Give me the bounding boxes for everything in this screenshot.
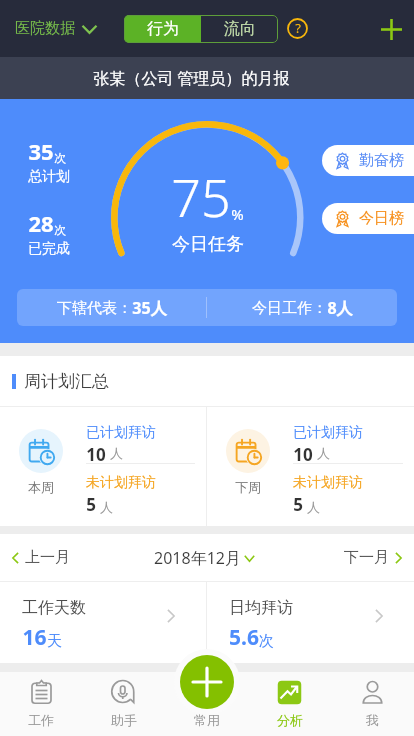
staticText: 人 bbox=[100, 499, 113, 515]
staticText: 未计划拜访 bbox=[86, 474, 156, 492]
button[interactable]: 分析 bbox=[248, 672, 331, 736]
staticText: 28 bbox=[28, 208, 54, 238]
staticText: 本周 bbox=[28, 479, 54, 495]
staticText: 5 bbox=[86, 493, 96, 516]
staticText: 周计划汇总 bbox=[24, 371, 109, 392]
staticText: 75 bbox=[171, 161, 231, 232]
staticText: 工作 bbox=[28, 712, 54, 728]
staticText: 8人 bbox=[327, 297, 353, 319]
button[interactable]: 流向 bbox=[201, 15, 278, 43]
staticText: 5 bbox=[293, 493, 303, 516]
button[interactable]: 工作 bbox=[0, 672, 82, 736]
staticText: 总计划 bbox=[28, 168, 70, 186]
button[interactable]: 今日榜 bbox=[322, 203, 414, 234]
staticText: 我 bbox=[366, 712, 379, 728]
staticText: 人 bbox=[317, 445, 330, 461]
staticText: 10 bbox=[86, 443, 106, 462]
staticText: 人 bbox=[307, 499, 320, 515]
button[interactable]: 行为 bbox=[124, 15, 201, 43]
staticText: 次 bbox=[54, 150, 66, 165]
button[interactable]: 工作天数 bbox=[0, 582, 206, 662]
staticText: 16 bbox=[22, 623, 47, 652]
staticText: 今日榜 bbox=[359, 209, 404, 228]
staticText: 人 bbox=[110, 445, 123, 461]
staticText: 已计划拜访 bbox=[293, 424, 363, 442]
button[interactable]: 2018年12月 bbox=[148, 539, 261, 577]
staticText: 2018年12月 bbox=[154, 547, 241, 569]
staticText: 未计划拜访 bbox=[293, 474, 363, 492]
staticText: 下辖代表： bbox=[57, 299, 132, 318]
staticText: 10 bbox=[293, 443, 313, 462]
staticText: 35人 bbox=[132, 297, 167, 319]
staticText: 医院数据 bbox=[15, 19, 75, 38]
button[interactable]: 勤奋榜 bbox=[322, 145, 414, 176]
staticText: 日均拜访 bbox=[229, 598, 293, 618]
staticText: 下一月 bbox=[344, 548, 389, 567]
button[interactable]: Add new bbox=[180, 655, 234, 709]
staticText: 工作天数 bbox=[22, 598, 86, 618]
staticText: 行为 bbox=[147, 19, 179, 39]
staticText: 张某（公司 管理员）的月报 bbox=[93, 67, 290, 89]
staticText: 已计划拜访 bbox=[86, 424, 156, 442]
staticText: 天 bbox=[47, 632, 62, 651]
staticText: 分析 bbox=[277, 712, 303, 728]
button[interactable]: 下一月 bbox=[332, 540, 414, 575]
button[interactable]: 医院数据 bbox=[0, 19, 124, 38]
button[interactable]: Add bbox=[373, 11, 409, 47]
staticText: 今日工作： bbox=[252, 299, 327, 318]
staticText: 勤奋榜 bbox=[359, 151, 404, 170]
staticText: 助手 bbox=[111, 712, 137, 728]
button[interactable]: 日均拜访 bbox=[207, 582, 414, 662]
staticText: 次 bbox=[259, 632, 274, 651]
button[interactable]: 我 bbox=[331, 672, 414, 736]
staticText: 流向 bbox=[224, 19, 256, 39]
staticText: ? bbox=[295, 19, 301, 37]
staticText: % bbox=[231, 204, 244, 224]
staticText: 上一月 bbox=[25, 548, 70, 567]
staticText: 35 bbox=[28, 136, 54, 166]
staticText: 下周 bbox=[235, 479, 261, 495]
staticText: 今日任务 bbox=[172, 233, 244, 256]
staticText: 5.6 bbox=[229, 623, 259, 652]
staticText: 次 bbox=[54, 222, 66, 237]
staticText: 已完成 bbox=[28, 240, 70, 258]
button[interactable]: 助手 bbox=[82, 672, 165, 736]
button[interactable]: 上一月 bbox=[0, 540, 82, 575]
button[interactable]: 常用 bbox=[165, 672, 248, 736]
button[interactable]: Help bbox=[287, 18, 308, 39]
staticText: 常用 bbox=[194, 712, 220, 728]
